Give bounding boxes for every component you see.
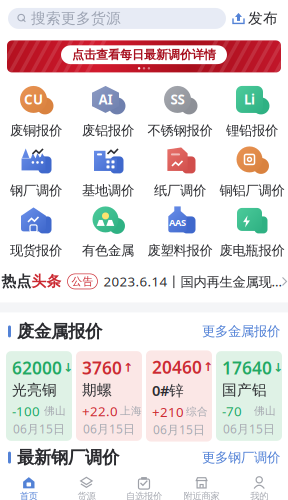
staticText: -100 (12, 402, 40, 420)
button[interactable]: 点击查看每日最新调价详情 (7, 40, 281, 72)
staticText: 我的 (250, 490, 268, 500)
staticText: 废电瓶报价 (219, 242, 284, 259)
staticText: 更多钢厂调价 (202, 449, 280, 466)
staticText: 佛山 (44, 404, 66, 418)
staticText: 点击查看每日最新调价详情 (72, 47, 216, 62)
staticText: ↑ (123, 361, 133, 374)
staticText: 62000 (12, 356, 62, 379)
staticText: CU (24, 91, 43, 108)
staticText: 公告 (71, 275, 93, 288)
staticText: 钢厂调价 (10, 182, 62, 199)
staticText: 有色金属 (82, 242, 134, 259)
staticText: 现货报价 (10, 242, 62, 259)
staticText: +210 (152, 403, 184, 421)
button[interactable]: 我的 (230, 473, 288, 500)
staticText: 废塑料报价 (147, 242, 212, 259)
staticText: 头条 (31, 272, 61, 290)
button[interactable]: 更多钢厂调价 (202, 449, 280, 466)
staticText: 06月15日 (223, 421, 275, 437)
staticText: 06月15日 (83, 421, 135, 437)
staticText: ↑ (203, 360, 213, 374)
staticText: 货源 (77, 490, 95, 500)
staticText: 3760 (82, 356, 122, 379)
button[interactable]: 首页 (0, 473, 58, 500)
button[interactable]: 货源 (58, 473, 115, 500)
staticText: 国产铝 (222, 381, 267, 399)
button[interactable]: 62000 (6, 351, 72, 441)
button[interactable]: 基地调价 (72, 146, 144, 206)
button[interactable]: 现货报价 (0, 206, 72, 266)
staticText: 不锈钢报价 (147, 122, 212, 139)
button[interactable]: Li (216, 86, 288, 146)
button[interactable]: 发布 (230, 7, 280, 29)
button[interactable]: 热点 (0, 266, 288, 296)
staticText: 首页 (20, 490, 38, 500)
staticText: 锂铅报价 (226, 122, 278, 139)
button[interactable]: 钢厂调价 (0, 146, 72, 206)
staticText: ↓ (63, 361, 73, 374)
staticText: 光亮铜 (12, 381, 57, 399)
button[interactable]: 纸厂调价 (144, 146, 216, 206)
button[interactable]: 附近商家 (173, 473, 230, 500)
staticText: 06月15日 (153, 422, 205, 437)
staticText: ↓ (273, 361, 283, 374)
button[interactable]: 废电瓶报价 (216, 206, 288, 266)
staticText: 废铜报价 (10, 122, 62, 139)
staticText: 发布 (248, 9, 278, 27)
button[interactable]: 有色金属 (72, 206, 144, 266)
staticText: 废铝报价 (82, 122, 134, 139)
button[interactable]: 铜铝厂调价 (216, 146, 288, 206)
staticText: 更多金属报价 (202, 323, 280, 340)
staticText: Li (244, 91, 255, 108)
staticText: 附近商家 (184, 490, 220, 500)
staticText: 17640 (222, 356, 272, 379)
staticText: 0#锌 (152, 380, 184, 400)
staticText: 纸厂调价 (154, 182, 206, 199)
staticText: 期螺 (82, 381, 112, 399)
staticText: 最新钢厂调价 (17, 447, 119, 468)
button[interactable]: CU (0, 86, 72, 146)
staticText: SS (170, 91, 184, 108)
staticText: AAS (169, 216, 186, 229)
button[interactable]: 更多金属报价 (202, 323, 280, 340)
staticText: 自选报价 (126, 490, 162, 500)
staticText: 20460 (152, 355, 202, 378)
staticText: 2023.6.14丨国内再生金属现… (103, 273, 282, 290)
button[interactable]: SS (144, 86, 216, 146)
staticText: 佛山 (254, 404, 276, 418)
button[interactable]: 20460 (146, 350, 212, 441)
staticText: +22.0 (82, 402, 118, 420)
button[interactable]: 自选报价 (115, 473, 173, 500)
staticText: 上海 (120, 404, 142, 418)
staticText: 综合 (186, 405, 208, 418)
staticText: 热点 (1, 272, 31, 290)
staticText: -70 (222, 402, 242, 420)
button[interactable]: AI (72, 86, 144, 146)
staticText: 铜铝厂调价 (219, 182, 284, 199)
staticText: AI (98, 91, 112, 108)
staticText: 06月15日 (13, 421, 65, 437)
staticText: 废金属报价 (17, 321, 102, 342)
staticText: 搜索更多货源 (31, 9, 121, 27)
staticText: 基地调价 (82, 182, 134, 199)
button[interactable]: 17640 (216, 351, 282, 441)
button[interactable]: AAS (144, 206, 216, 266)
button[interactable]: 3760 (76, 351, 142, 441)
